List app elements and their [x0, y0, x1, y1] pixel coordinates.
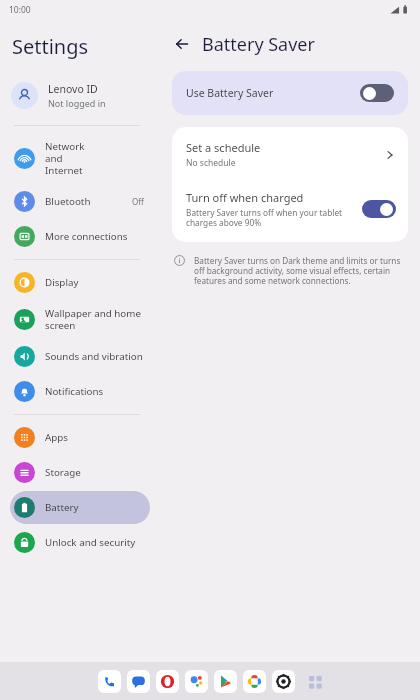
button[interactable]: Wallpaper and home screen — [10, 301, 150, 338]
button[interactable]: Apps — [10, 421, 150, 454]
button[interactable]: Bluetooth — [10, 185, 150, 218]
button[interactable]: More connections — [10, 220, 150, 253]
staticText: 10:00 — [9, 4, 31, 16]
button[interactable]: Sounds and vibration — [10, 340, 150, 373]
button[interactable]: Set a schedule — [172, 127, 408, 180]
button[interactable]: Storage — [10, 456, 150, 489]
staticText: Battery — [45, 501, 144, 514]
button[interactable]: Turn off when charged — [172, 180, 408, 242]
button[interactable]: Play Store — [214, 670, 237, 693]
staticText: Settings — [12, 33, 89, 60]
staticText: Bluetooth — [45, 195, 132, 208]
button[interactable]: Notifications — [10, 375, 150, 408]
button[interactable]: Lenovo ID — [0, 79, 160, 112]
staticText: Not logged in — [48, 97, 106, 109]
staticText: Battery Saver turns on Dark theme and li… — [194, 255, 402, 287]
button[interactable]: Messages — [127, 670, 150, 693]
staticText: Display — [45, 276, 144, 289]
button[interactable]: Back — [169, 31, 195, 57]
staticText: Network and Internet — [45, 140, 144, 177]
button[interactable]: All apps — [304, 671, 326, 693]
staticText: Apps — [45, 431, 144, 444]
staticText: Turn off when charged — [186, 190, 304, 205]
staticText: Use Battery Saver — [186, 86, 360, 100]
button[interactable]: Settings — [272, 670, 295, 693]
staticText: Wallpaper and home screen — [45, 307, 144, 332]
button[interactable]: Battery — [10, 491, 150, 524]
staticText: Off — [132, 196, 144, 207]
button[interactable]: Toggle — [360, 84, 394, 102]
button[interactable]: Opera — [156, 670, 179, 693]
button[interactable]: Assistant — [185, 670, 208, 693]
staticText: Battery Saver — [202, 32, 315, 57]
staticText: No schedule — [186, 157, 236, 169]
button[interactable]: Network and Internet — [10, 134, 150, 183]
staticText: Set a schedule — [186, 140, 261, 155]
button[interactable]: Photos — [243, 670, 266, 693]
button[interactable]: Use Battery Saver — [172, 71, 408, 115]
staticText: More connections — [45, 230, 144, 243]
button[interactable]: Toggle — [362, 200, 396, 218]
button[interactable]: Phone — [98, 670, 121, 693]
staticText: Lenovo ID — [48, 82, 98, 96]
staticText: Notifications — [45, 385, 144, 398]
button[interactable]: Display — [10, 266, 150, 299]
staticText: Sounds and vibration — [45, 350, 144, 363]
staticText: Unlock and security — [45, 536, 144, 549]
staticText: Storage — [45, 466, 144, 479]
button[interactable]: Unlock and security — [10, 526, 150, 559]
staticText: Battery Saver turns off when your tablet… — [186, 207, 354, 228]
